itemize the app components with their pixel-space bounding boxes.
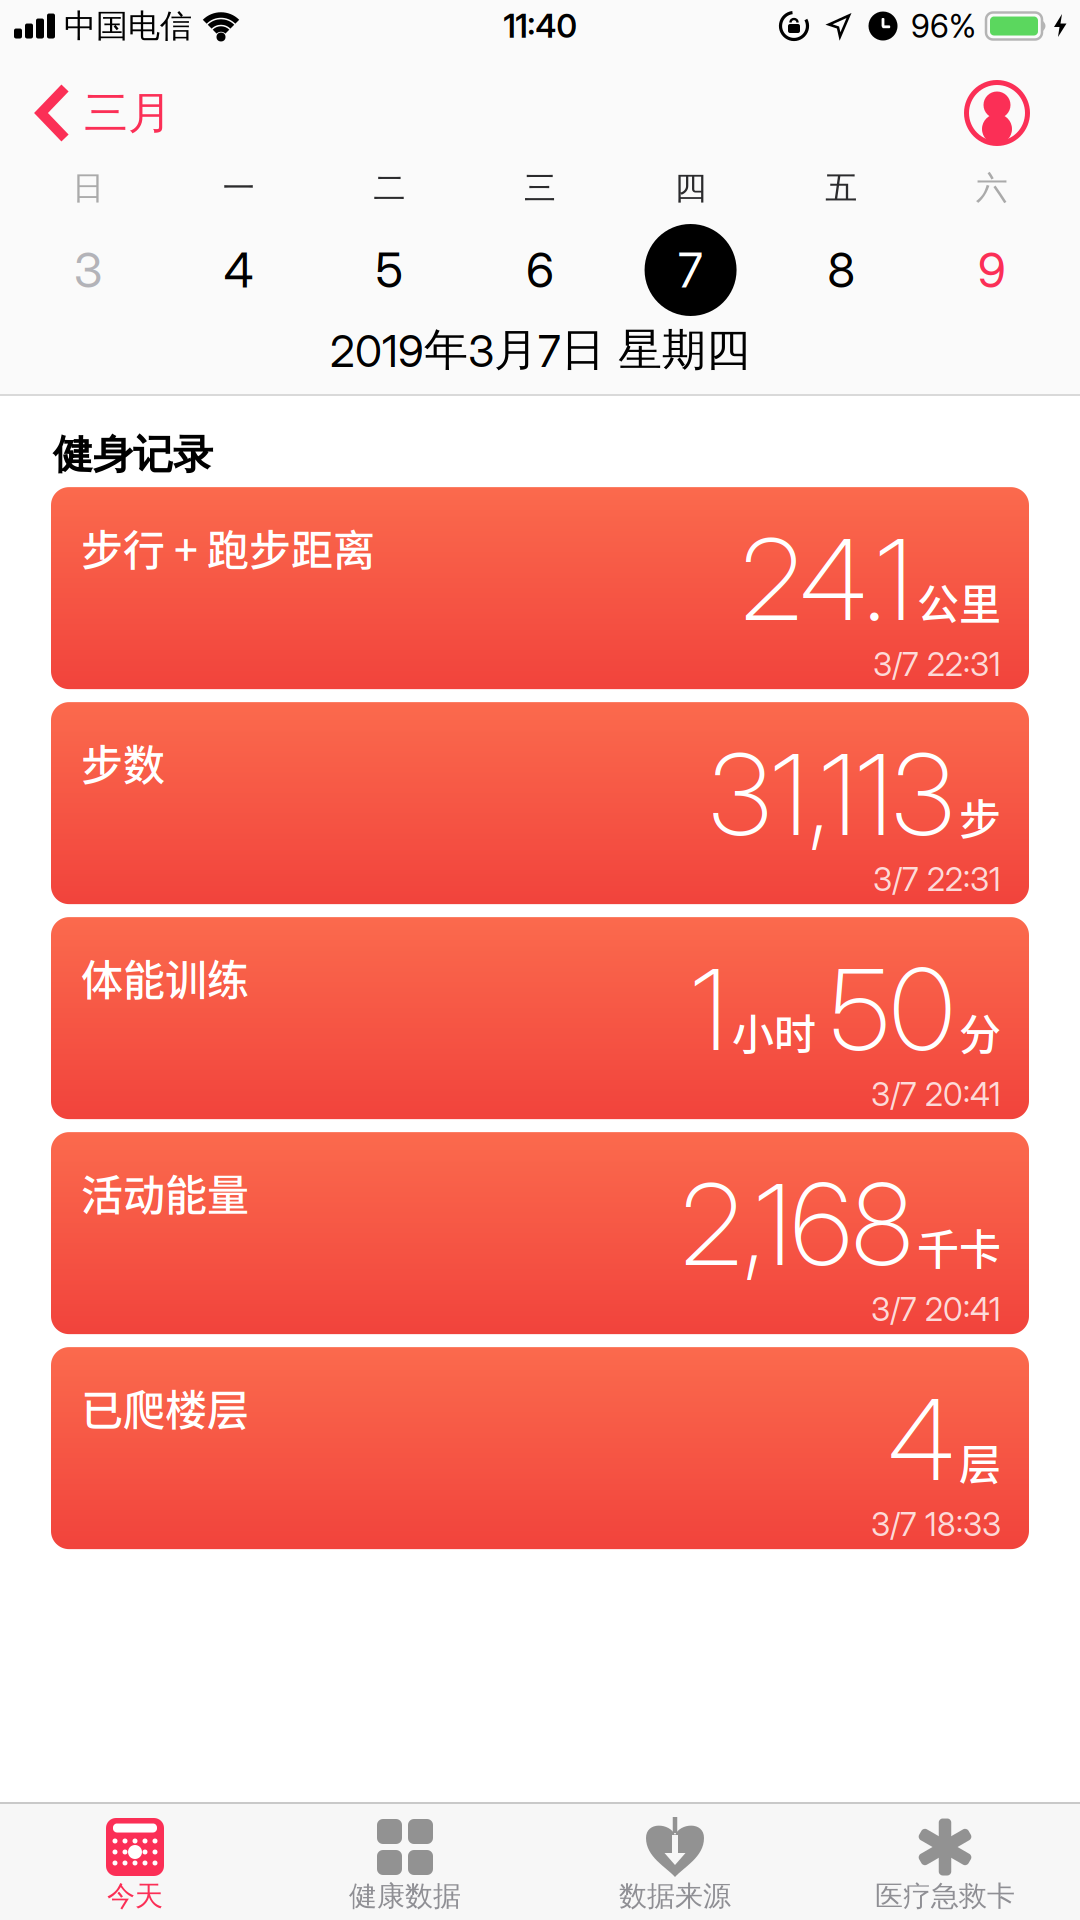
staticText: 11:40 — [503, 7, 576, 45]
staticText: 健身记录 — [53, 430, 213, 479]
staticText: 2,168 — [681, 1158, 912, 1290]
button[interactable]: 3 — [13, 242, 164, 298]
button[interactable]: 今天 — [0, 1817, 270, 1913]
staticText: 日 — [72, 168, 104, 208]
staticText: 三 — [524, 168, 556, 208]
staticText: 数据来源 — [619, 1879, 731, 1913]
staticText: 今天 — [107, 1879, 163, 1913]
staticText: 二 — [373, 168, 405, 208]
staticText: 步行 + 跑步距离 — [81, 517, 375, 578]
button[interactable]: 医疗急救卡 — [810, 1817, 1080, 1913]
button[interactable]: 5 — [314, 242, 465, 298]
staticText: 7 — [678, 242, 703, 298]
staticText: 3 — [74, 242, 103, 298]
button[interactable]: 活动能量 — [51, 1132, 1029, 1334]
button[interactable]: 体能训练 — [51, 917, 1029, 1119]
staticText: 六 — [976, 168, 1008, 208]
staticText: 中国电信 — [64, 6, 192, 46]
staticText: 四 — [675, 168, 707, 208]
staticText: 3/7 22:31 — [873, 645, 1001, 683]
staticText: 6 — [526, 242, 554, 298]
button[interactable]: 4 — [164, 242, 314, 298]
staticText: 24.1 — [741, 513, 912, 645]
button[interactable]: 数据来源 — [540, 1817, 810, 1913]
button[interactable]: 已爬楼层 — [51, 1347, 1029, 1549]
staticText: 五 — [825, 168, 857, 208]
staticText: 小时 — [732, 1001, 825, 1062]
button[interactable]: 9 — [916, 242, 1067, 298]
staticText: 3/7 20:41 — [871, 1290, 1001, 1328]
staticText: 层 — [959, 1431, 1001, 1492]
staticText: 一 — [223, 168, 255, 208]
staticText: 5 — [375, 242, 403, 298]
button[interactable]: 三月 — [38, 86, 172, 140]
staticText: 96% — [911, 7, 976, 45]
staticText: 步 — [959, 786, 1001, 847]
button[interactable]: 健康数据 — [270, 1817, 540, 1913]
staticText: 已爬楼层 — [81, 1377, 249, 1438]
staticText: 31,113 — [709, 728, 954, 860]
staticText: 3/7 22:31 — [873, 860, 1001, 898]
staticText: 分 — [959, 1001, 1001, 1062]
button[interactable] — [964, 80, 1030, 146]
staticText: 8 — [827, 242, 855, 298]
button[interactable]: 步行 + 跑步距离 — [51, 487, 1029, 689]
staticText: 千卡 — [917, 1216, 1001, 1277]
staticText: 3/7 18:33 — [871, 1505, 1001, 1543]
staticText: 4 — [888, 1373, 954, 1505]
staticText: 1 — [691, 943, 727, 1075]
button[interactable]: 6 — [465, 242, 615, 298]
staticText: 2019年3月7日 星期四 — [330, 323, 750, 377]
staticText: 健康数据 — [349, 1879, 461, 1913]
staticText: 活动能量 — [81, 1162, 249, 1223]
staticText: 步数 — [81, 732, 165, 793]
button[interactable]: 8 — [766, 242, 916, 298]
staticText: 3/7 20:41 — [871, 1075, 1001, 1113]
staticText: 50 — [830, 943, 954, 1075]
staticText: 4 — [224, 242, 254, 298]
staticText: 公里 — [917, 571, 1001, 632]
button[interactable]: 步数 — [51, 702, 1029, 904]
staticText: 医疗急救卡 — [875, 1879, 1015, 1913]
staticText: 9 — [978, 242, 1006, 298]
staticText: 三月 — [84, 86, 172, 140]
staticText: 体能训练 — [81, 947, 249, 1008]
button[interactable]: 7 — [615, 224, 766, 316]
